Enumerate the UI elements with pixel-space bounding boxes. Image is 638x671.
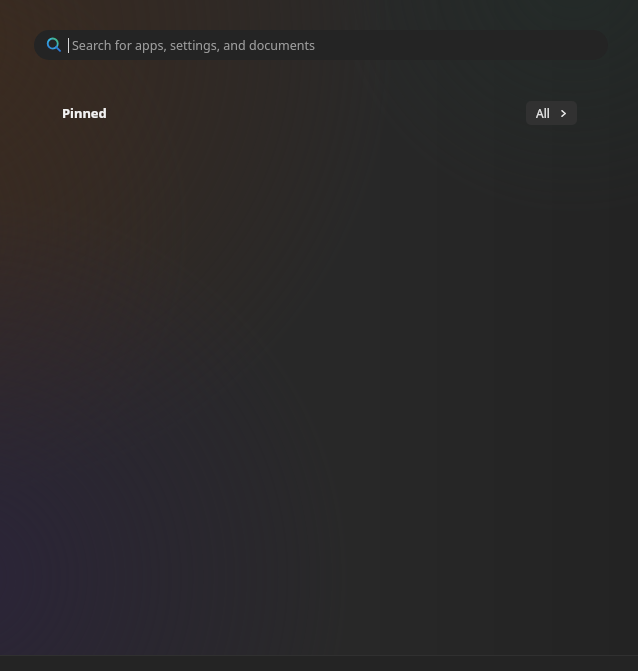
staticText: Pinned (62, 104, 107, 122)
staticText: All (536, 105, 550, 121)
staticText: Search for apps, settings, and documents (72, 37, 315, 54)
button[interactable]: All (526, 101, 577, 125)
other: Search (46, 37, 62, 53)
button[interactable]: Search (34, 30, 608, 60)
